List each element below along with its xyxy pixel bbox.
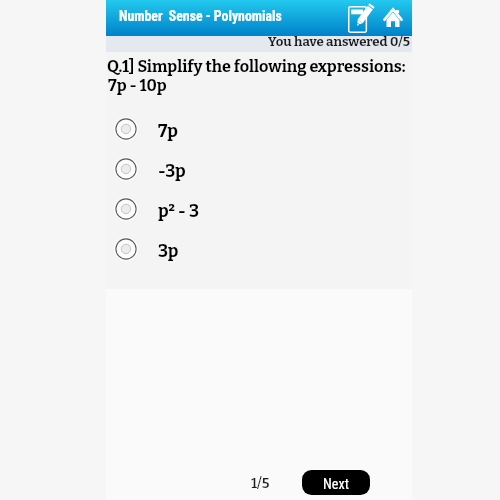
button[interactable]: p² - 3: [106, 189, 412, 229]
button[interactable]: -3p: [106, 149, 412, 189]
staticText: 3p: [158, 241, 179, 262]
staticText: 7p: [158, 121, 178, 142]
staticText: Q.1] Simplify the following expressions:: [107, 57, 406, 76]
staticText: 1/5: [251, 475, 270, 492]
button[interactable]: Number Sense - Polynomials: [116, 0, 286, 36]
button[interactable]: Home: [377, 0, 412, 36]
button[interactable]: 7p: [106, 109, 412, 149]
staticText: You have answered 0/5: [268, 34, 410, 50]
staticText: Number Sense - Polynomials: [119, 8, 282, 24]
staticText: -3p: [158, 161, 186, 182]
staticText: Next: [323, 476, 349, 493]
staticText: 7p - 10p: [108, 76, 167, 95]
staticText: p² - 3: [158, 201, 200, 222]
button[interactable]: Notes: [341, 0, 377, 36]
button[interactable]: 3p: [106, 229, 412, 269]
button[interactable]: Next: [302, 470, 370, 495]
